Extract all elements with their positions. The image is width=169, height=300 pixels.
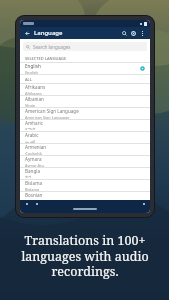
staticText: Armenian — [25, 144, 47, 150]
staticText: Bosnian — [25, 192, 43, 198]
button[interactable]: Armenian — [20, 144, 150, 156]
staticText: Bangla — [25, 168, 40, 174]
staticText: Aymar Aru — [25, 163, 44, 167]
staticText: English — [25, 70, 38, 74]
button[interactable]: Bosnian — [20, 192, 150, 200]
button[interactable]: Arabic — [20, 132, 150, 144]
staticText: ALL — [25, 77, 32, 82]
staticText: Bislama — [25, 187, 40, 191]
button[interactable]: Aymara — [20, 156, 150, 168]
button[interactable]: Bislama — [20, 180, 150, 192]
staticText: SELECTED LANGUAGE — [25, 56, 67, 61]
staticText: العربية — [25, 139, 36, 143]
button[interactable]: Search — [120, 29, 129, 38]
staticText: Albanian — [25, 96, 44, 102]
button[interactable]: Albanian — [20, 96, 150, 108]
staticText: English — [25, 63, 41, 69]
button[interactable]: Recents — [141, 201, 146, 206]
staticText: Afrikaans — [25, 91, 42, 95]
button[interactable]: Back — [24, 201, 29, 206]
staticText: Aymara — [25, 156, 42, 162]
button[interactable]: English — [20, 63, 150, 75]
button[interactable]: Afrikaans — [20, 84, 150, 96]
button[interactable]: More options — [138, 29, 147, 38]
staticText: Հայերեն — [25, 151, 43, 155]
button[interactable]: Search languages — [23, 42, 147, 51]
staticText: Amharic — [25, 120, 43, 126]
staticText: Arabic — [25, 132, 39, 138]
staticText: Bislama — [25, 180, 43, 186]
button[interactable]: Settings — [129, 29, 138, 38]
staticText: Shqip — [25, 103, 36, 107]
button[interactable]: American Sign Language — [20, 108, 150, 120]
button[interactable]: Amharic — [20, 120, 150, 132]
staticText: American Sign Language — [25, 115, 70, 119]
staticText: Language — [34, 29, 63, 37]
staticText: Translations in 100+ languages with audi… — [21, 232, 149, 279]
staticText: አማርኛ — [25, 127, 36, 131]
staticText: American Sign Language — [25, 108, 79, 114]
button[interactable]: Home — [34, 201, 39, 206]
staticText: Search languages — [33, 44, 71, 50]
staticText: Afrikaans — [25, 84, 46, 90]
button[interactable]: Bangla — [20, 168, 150, 180]
staticText: বাংলা — [25, 175, 32, 179]
button[interactable]: Back — [23, 29, 32, 38]
